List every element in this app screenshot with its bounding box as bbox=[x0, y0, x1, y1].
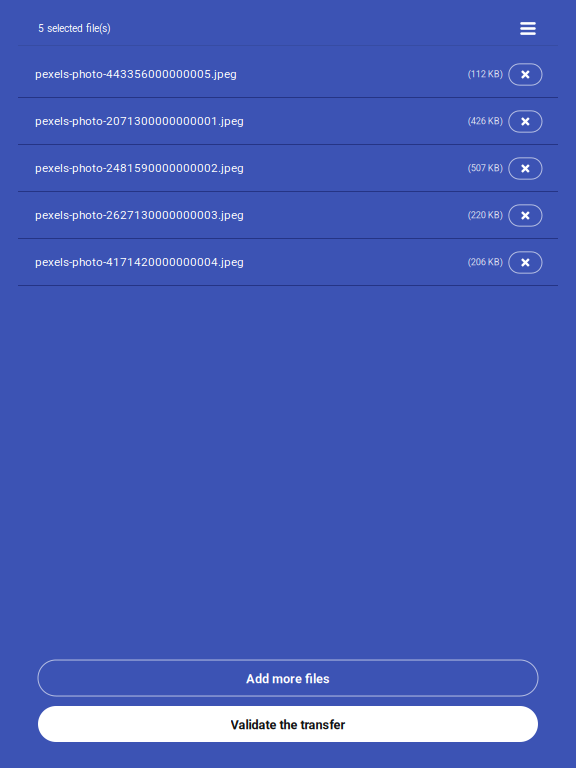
staticText: pexels-photo-443356000000005.jpeg bbox=[35, 67, 237, 81]
staticText: pexels-photo-2071300000000001.jpeg bbox=[35, 114, 244, 128]
button[interactable]: Remove pexels-photo-2481590000000002.jpe… bbox=[509, 157, 542, 179]
button[interactable]: Validate the transfer bbox=[38, 706, 538, 742]
button[interactable]: Remove pexels-photo-2627130000000003.jpe… bbox=[509, 204, 542, 226]
button[interactable]: Add more files bbox=[38, 660, 538, 696]
staticText: pexels-photo-2481590000000002.jpeg bbox=[35, 161, 244, 175]
staticText: Add more files bbox=[246, 672, 330, 686]
button[interactable]: Remove pexels-photo-443356000000005.jpeg bbox=[509, 63, 542, 85]
staticText: (112 KB) bbox=[468, 69, 503, 79]
button[interactable]: Remove pexels-photo-2071300000000001.jpe… bbox=[509, 110, 542, 132]
staticText: Validate the transfer bbox=[230, 718, 345, 732]
staticText: (206 KB) bbox=[468, 257, 503, 267]
staticText: 5 selected file(s) bbox=[38, 23, 111, 34]
button[interactable]: Remove pexels-photo-4171420000000004.jpe… bbox=[509, 251, 542, 273]
button[interactable]: Menu bbox=[511, 11, 545, 45]
staticText: (220 KB) bbox=[468, 210, 503, 220]
staticText: pexels-photo-4171420000000004.jpeg bbox=[35, 255, 244, 269]
staticText: pexels-photo-2627130000000003.jpeg bbox=[35, 208, 244, 222]
staticText: (507 KB) bbox=[468, 163, 503, 173]
staticText: (426 KB) bbox=[468, 116, 503, 126]
